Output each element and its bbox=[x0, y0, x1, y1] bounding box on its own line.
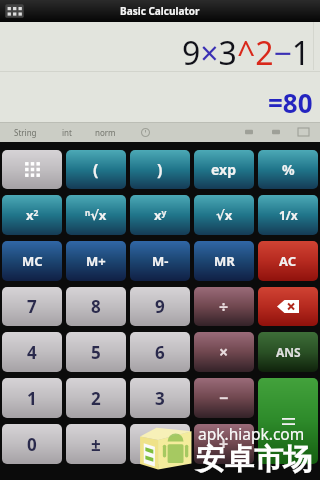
staticText: 0 bbox=[27, 433, 37, 456]
other: Backspace bbox=[277, 300, 299, 313]
staticText: xy bbox=[154, 206, 167, 224]
button[interactable]: × bbox=[194, 332, 254, 372]
other: Equals bbox=[282, 418, 295, 425]
staticText: . bbox=[158, 433, 163, 456]
button[interactable]: Calculator icon bbox=[4, 3, 25, 19]
staticText: M+ bbox=[86, 252, 106, 270]
button[interactable]: 6 bbox=[130, 332, 190, 372]
button[interactable]: 1/x bbox=[258, 195, 318, 235]
button[interactable]: Angle unit bbox=[245, 128, 253, 136]
staticText: AC bbox=[279, 252, 297, 270]
button[interactable]: exp bbox=[194, 150, 254, 189]
button[interactable]: ANS bbox=[258, 332, 318, 372]
staticText: 3 bbox=[155, 387, 165, 410]
staticText: 1/x bbox=[279, 207, 298, 223]
staticText: 9 bbox=[155, 295, 165, 318]
button[interactable]: x2 bbox=[2, 195, 62, 235]
staticText: ( bbox=[93, 159, 99, 181]
button[interactable]: . bbox=[130, 424, 190, 464]
button[interactable]: MC bbox=[2, 241, 62, 281]
staticText: Basic Calculator bbox=[120, 4, 200, 18]
staticText: apk.hiapk.com bbox=[198, 423, 305, 444]
staticText: 5 bbox=[91, 341, 101, 364]
button[interactable]: Keypad modes bbox=[2, 150, 62, 189]
button[interactable]: norm bbox=[95, 127, 116, 138]
staticText: ) bbox=[157, 159, 163, 181]
button[interactable]: Number base bbox=[272, 128, 280, 136]
button[interactable]: String bbox=[14, 127, 37, 138]
button[interactable]: M- bbox=[130, 241, 190, 281]
button[interactable]: 7 bbox=[2, 287, 62, 326]
other: Keypad modes bbox=[24, 161, 41, 178]
button[interactable]: 5 bbox=[66, 332, 126, 372]
button[interactable]: n√x bbox=[66, 195, 126, 235]
staticText: × bbox=[219, 341, 229, 363]
button[interactable]: % bbox=[258, 150, 318, 189]
button[interactable]: 1 bbox=[2, 378, 62, 418]
staticText: 安卓市场 bbox=[196, 441, 312, 478]
staticText: M- bbox=[152, 252, 169, 270]
staticText: ANS bbox=[276, 344, 301, 360]
staticText: ÷ bbox=[219, 296, 229, 318]
staticText: % bbox=[282, 160, 295, 179]
button[interactable]: MR bbox=[194, 241, 254, 281]
button[interactable]: int bbox=[62, 127, 72, 138]
staticText: 9×3^2−1 bbox=[182, 31, 311, 75]
staticText: √x bbox=[216, 206, 233, 224]
button[interactable]: xy bbox=[130, 195, 190, 235]
staticText: =80 bbox=[268, 85, 313, 120]
button[interactable]: + bbox=[194, 424, 254, 464]
button[interactable]: √x bbox=[194, 195, 254, 235]
staticText: MC bbox=[22, 252, 43, 270]
button[interactable]: − bbox=[194, 378, 254, 418]
button[interactable]: Settings bbox=[298, 128, 309, 136]
staticText: n√x bbox=[85, 206, 107, 224]
staticText: − bbox=[219, 387, 229, 409]
staticText: MR bbox=[214, 252, 235, 270]
button[interactable]: ( bbox=[66, 150, 126, 189]
button[interactable]: 9 bbox=[130, 287, 190, 326]
button[interactable]: M+ bbox=[66, 241, 126, 281]
staticText: 8 bbox=[91, 295, 101, 318]
button[interactable]: 4 bbox=[2, 332, 62, 372]
button[interactable]: Equals bbox=[258, 378, 318, 464]
staticText: 6 bbox=[155, 341, 165, 364]
button[interactable]: ÷ bbox=[194, 287, 254, 326]
button[interactable]: ) bbox=[130, 150, 190, 189]
staticText: 4 bbox=[27, 341, 37, 364]
button[interactable]: History bbox=[141, 128, 150, 137]
button[interactable]: Backspace bbox=[258, 287, 318, 326]
button[interactable]: 2 bbox=[66, 378, 126, 418]
button[interactable]: 8 bbox=[66, 287, 126, 326]
staticText: ± bbox=[91, 433, 101, 456]
staticText: exp bbox=[211, 160, 237, 179]
staticText: 2 bbox=[91, 387, 101, 410]
staticText: 1 bbox=[27, 387, 37, 410]
staticText: 7 bbox=[27, 295, 37, 318]
button[interactable]: AC bbox=[258, 241, 318, 281]
button[interactable]: 3 bbox=[130, 378, 190, 418]
staticText: x2 bbox=[26, 206, 39, 224]
staticText: + bbox=[219, 433, 229, 455]
button[interactable]: 0 bbox=[2, 424, 62, 464]
button[interactable]: ± bbox=[66, 424, 126, 464]
